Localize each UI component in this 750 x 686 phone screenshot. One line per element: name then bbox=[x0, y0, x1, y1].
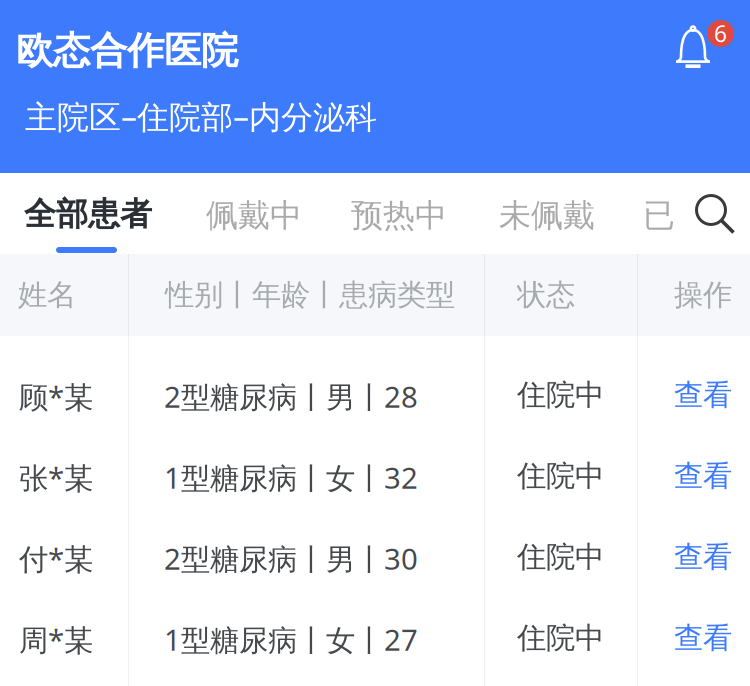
staticText: 查看 bbox=[674, 620, 732, 656]
staticText: 性别丨年龄丨患病类型 bbox=[165, 277, 455, 313]
staticText: 2型糖尿病丨男丨28 bbox=[164, 377, 418, 416]
button[interactable]: 查看 bbox=[637, 599, 750, 680]
staticText: 全部患者 bbox=[24, 194, 152, 234]
staticText: 佩戴中 bbox=[206, 196, 302, 235]
button[interactable]: 全部患者 bbox=[0, 173, 172, 254]
staticText: 2型糖尿病丨男丨30 bbox=[164, 539, 418, 578]
staticText: 主院区–住院部–内分泌科 bbox=[25, 95, 377, 137]
button[interactable]: 查看 bbox=[637, 518, 750, 599]
staticText: 付*某 bbox=[19, 539, 93, 578]
button[interactable]: 已 bbox=[623, 173, 685, 254]
staticText: 住院中 bbox=[517, 539, 604, 575]
staticText: 1型糖尿病丨女丨32 bbox=[164, 458, 418, 497]
button[interactable]: 预热中 bbox=[331, 173, 469, 254]
staticText: 查看 bbox=[674, 458, 732, 494]
staticText: 6 bbox=[714, 18, 727, 48]
staticText: 欧态合作医院 bbox=[16, 28, 238, 74]
staticText: 姓名 bbox=[18, 277, 76, 313]
button[interactable]: 佩戴中 bbox=[186, 173, 324, 254]
staticText: 状态 bbox=[517, 277, 575, 313]
staticText: 张*某 bbox=[19, 458, 93, 497]
staticText: 住院中 bbox=[517, 458, 604, 494]
button[interactable]: 查看 bbox=[637, 437, 750, 518]
staticText: 顾*某 bbox=[19, 377, 93, 416]
staticText: 周*某 bbox=[19, 620, 93, 659]
button[interactable]: 未佩戴 bbox=[479, 173, 617, 254]
staticText: 查看 bbox=[674, 539, 732, 575]
button[interactable]: Notifications bbox=[653, 10, 749, 88]
staticText: 操作 bbox=[674, 277, 732, 313]
button[interactable]: 查看 bbox=[637, 356, 750, 437]
button[interactable]: Search bbox=[684, 173, 750, 254]
staticText: 已 bbox=[643, 196, 675, 235]
staticText: 未佩戴 bbox=[499, 196, 595, 235]
staticText: 查看 bbox=[674, 377, 732, 413]
staticText: 住院中 bbox=[517, 620, 604, 656]
staticText: 预热中 bbox=[351, 196, 447, 235]
staticText: 1型糖尿病丨女丨27 bbox=[164, 620, 418, 659]
staticText: 住院中 bbox=[517, 377, 604, 413]
